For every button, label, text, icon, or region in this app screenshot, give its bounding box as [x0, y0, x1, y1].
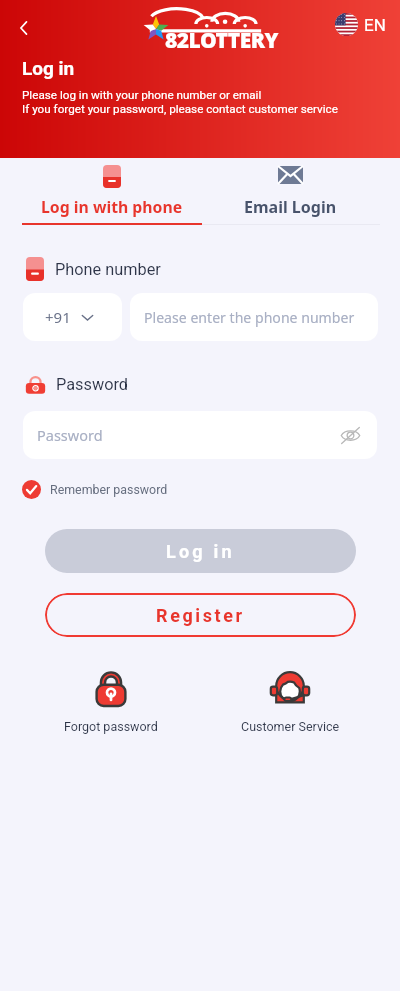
button[interactable]: Please enter the phone number — [130, 293, 378, 341]
staticText: Log in with phone — [41, 196, 183, 218]
button[interactable]: Customer Service — [220, 668, 360, 734]
button[interactable]: Log in with phone — [22, 158, 202, 228]
button[interactable]: +91 — [23, 293, 122, 341]
staticText: Email Login — [244, 196, 337, 218]
staticText: EN — [364, 15, 386, 35]
staticText: Remember password — [50, 482, 168, 497]
staticText: +91 — [45, 307, 71, 327]
staticText: Register — [156, 605, 245, 626]
button[interactable]: Show password — [337, 422, 363, 448]
staticText: Customer Service — [241, 719, 340, 734]
button[interactable]: Remember password — [22, 480, 168, 499]
staticText: Phone number — [55, 260, 161, 279]
staticText: Please log in with your phone number or … — [22, 88, 338, 116]
staticText: Password — [56, 375, 128, 394]
button[interactable]: Email Login — [200, 158, 380, 228]
button[interactable]: Register — [45, 593, 356, 637]
button[interactable]: EN — [335, 13, 386, 36]
staticText: Log in — [22, 57, 75, 79]
button[interactable]: Back — [8, 12, 40, 44]
staticText: Please enter the phone number — [144, 308, 355, 327]
staticText: Password — [37, 425, 103, 445]
staticText: Log in — [166, 541, 235, 562]
button[interactable]: Forgot password — [41, 668, 181, 734]
button[interactable]: Password — [23, 411, 377, 459]
staticText: 82LOTTERY — [165, 26, 278, 55]
staticText: Forgot password — [64, 719, 158, 734]
button[interactable]: Log in — [45, 529, 356, 573]
